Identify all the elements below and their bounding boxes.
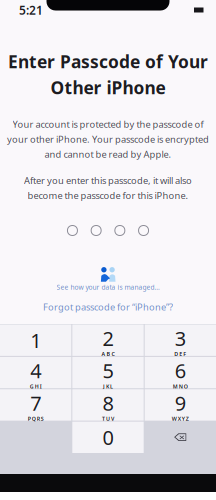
- staticText: 8: [102, 390, 113, 416]
- staticText: 2: [102, 325, 113, 351]
- button[interactable]: 9: [145, 389, 216, 421]
- staticText: T U V: [102, 415, 114, 422]
- staticText: Enter Passcode of Your: [8, 50, 208, 73]
- staticText: 0: [102, 424, 113, 451]
- button[interactable]: Delete: [145, 422, 216, 453]
- button[interactable]: Forgot passcode for “iPhone”?: [43, 301, 173, 313]
- staticText: A B C: [101, 350, 114, 357]
- staticText: and cannot be read by Apple.: [44, 148, 171, 160]
- staticText: G H I: [30, 383, 42, 390]
- staticText: 5:21: [19, 2, 43, 18]
- staticText: 6: [175, 357, 186, 384]
- button[interactable]: 0: [72, 422, 144, 453]
- staticText: P Q R S: [28, 415, 44, 422]
- button[interactable]: 7: [0, 389, 71, 421]
- staticText: your other iPhone. Your passcode is encr…: [7, 133, 209, 145]
- staticText: 4: [30, 357, 41, 384]
- staticText: Other iPhone: [50, 76, 165, 99]
- staticText: 5: [102, 357, 113, 384]
- staticText: Forgot passcode for “iPhone”?: [43, 301, 173, 313]
- staticText: 9: [175, 390, 186, 416]
- staticText: See how your data is managed…: [56, 283, 159, 292]
- button[interactable]: See how your data is managed…: [56, 267, 159, 292]
- button[interactable]: 5: [72, 357, 144, 388]
- button[interactable]: 8: [72, 389, 144, 421]
- staticText: After you enter this passcode, it will a…: [24, 174, 192, 187]
- staticText: W X Y Z: [172, 415, 189, 422]
- button[interactable]: 2: [72, 324, 144, 356]
- button[interactable]: 3: [145, 324, 216, 356]
- button[interactable]: 1: [0, 324, 71, 356]
- staticText: 1: [30, 327, 41, 353]
- button[interactable]: 4: [0, 357, 71, 388]
- staticText: M N O: [173, 383, 188, 390]
- button[interactable]: 6: [145, 357, 216, 388]
- staticText: D E F: [174, 350, 186, 357]
- staticText: 7: [30, 390, 41, 416]
- staticText: J K L: [103, 383, 113, 390]
- staticText: Your account is protected by the passcod…: [12, 118, 203, 130]
- staticText: 3: [175, 325, 186, 351]
- staticText: become the passcode for this iPhone.: [27, 189, 188, 201]
